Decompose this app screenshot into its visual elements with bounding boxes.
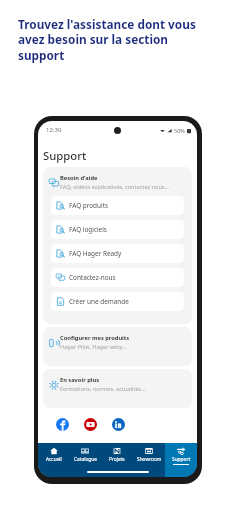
button[interactable]: Catalogue <box>69 443 101 477</box>
staticText: Hager Pilot, Hager witty… <box>60 343 127 351</box>
button[interactable]: Contactez-nous <box>51 268 184 287</box>
button[interactable]: Accueil <box>38 443 69 477</box>
button[interactable]: Configurer mes produits <box>43 327 192 366</box>
staticText: Accueil <box>46 456 62 463</box>
staticText: Contactez-nous <box>69 273 116 282</box>
staticText: 12:30 <box>46 126 62 134</box>
button[interactable]: Créer une demande <box>51 292 184 311</box>
staticText: Projets <box>109 456 125 463</box>
button[interactable]: En savoir plus <box>43 369 192 408</box>
button[interactable]: Facebook <box>56 418 69 431</box>
button[interactable]: LinkedIn <box>112 418 125 431</box>
staticText: FAQ logiciels <box>69 225 107 234</box>
button[interactable]: Projets <box>101 443 133 477</box>
staticText: Catalogue <box>74 456 97 463</box>
button[interactable]: FAQ produits <box>51 196 184 215</box>
button[interactable]: FAQ Hager Ready <box>51 244 184 263</box>
button[interactable]: Showroom <box>133 443 165 477</box>
staticText: Support <box>43 148 87 163</box>
staticText: Support <box>172 456 191 463</box>
staticText: FAQ produits <box>69 201 109 210</box>
staticText: Créer une demande <box>69 297 129 306</box>
button[interactable]: Support <box>165 443 197 477</box>
staticText: FAQ Hager Ready <box>69 249 122 258</box>
staticText: Configurer mes produits <box>60 334 130 342</box>
button[interactable]: Besoin d'aide <box>43 167 192 324</box>
button[interactable]: FAQ logiciels <box>51 220 184 239</box>
staticText: FAQ, vidéos explicatives, contactez nous… <box>60 183 169 191</box>
staticText: Besoin d'aide <box>60 174 98 182</box>
staticText: Formations, normes, actualités… <box>60 385 146 393</box>
staticText: En savoir plus <box>60 376 99 384</box>
staticText: 50% <box>174 127 185 134</box>
staticText: Showroom <box>137 456 162 463</box>
staticText: Trouvez l'assistance dont vous avez beso… <box>18 16 202 64</box>
button[interactable]: YouTube <box>84 418 97 431</box>
